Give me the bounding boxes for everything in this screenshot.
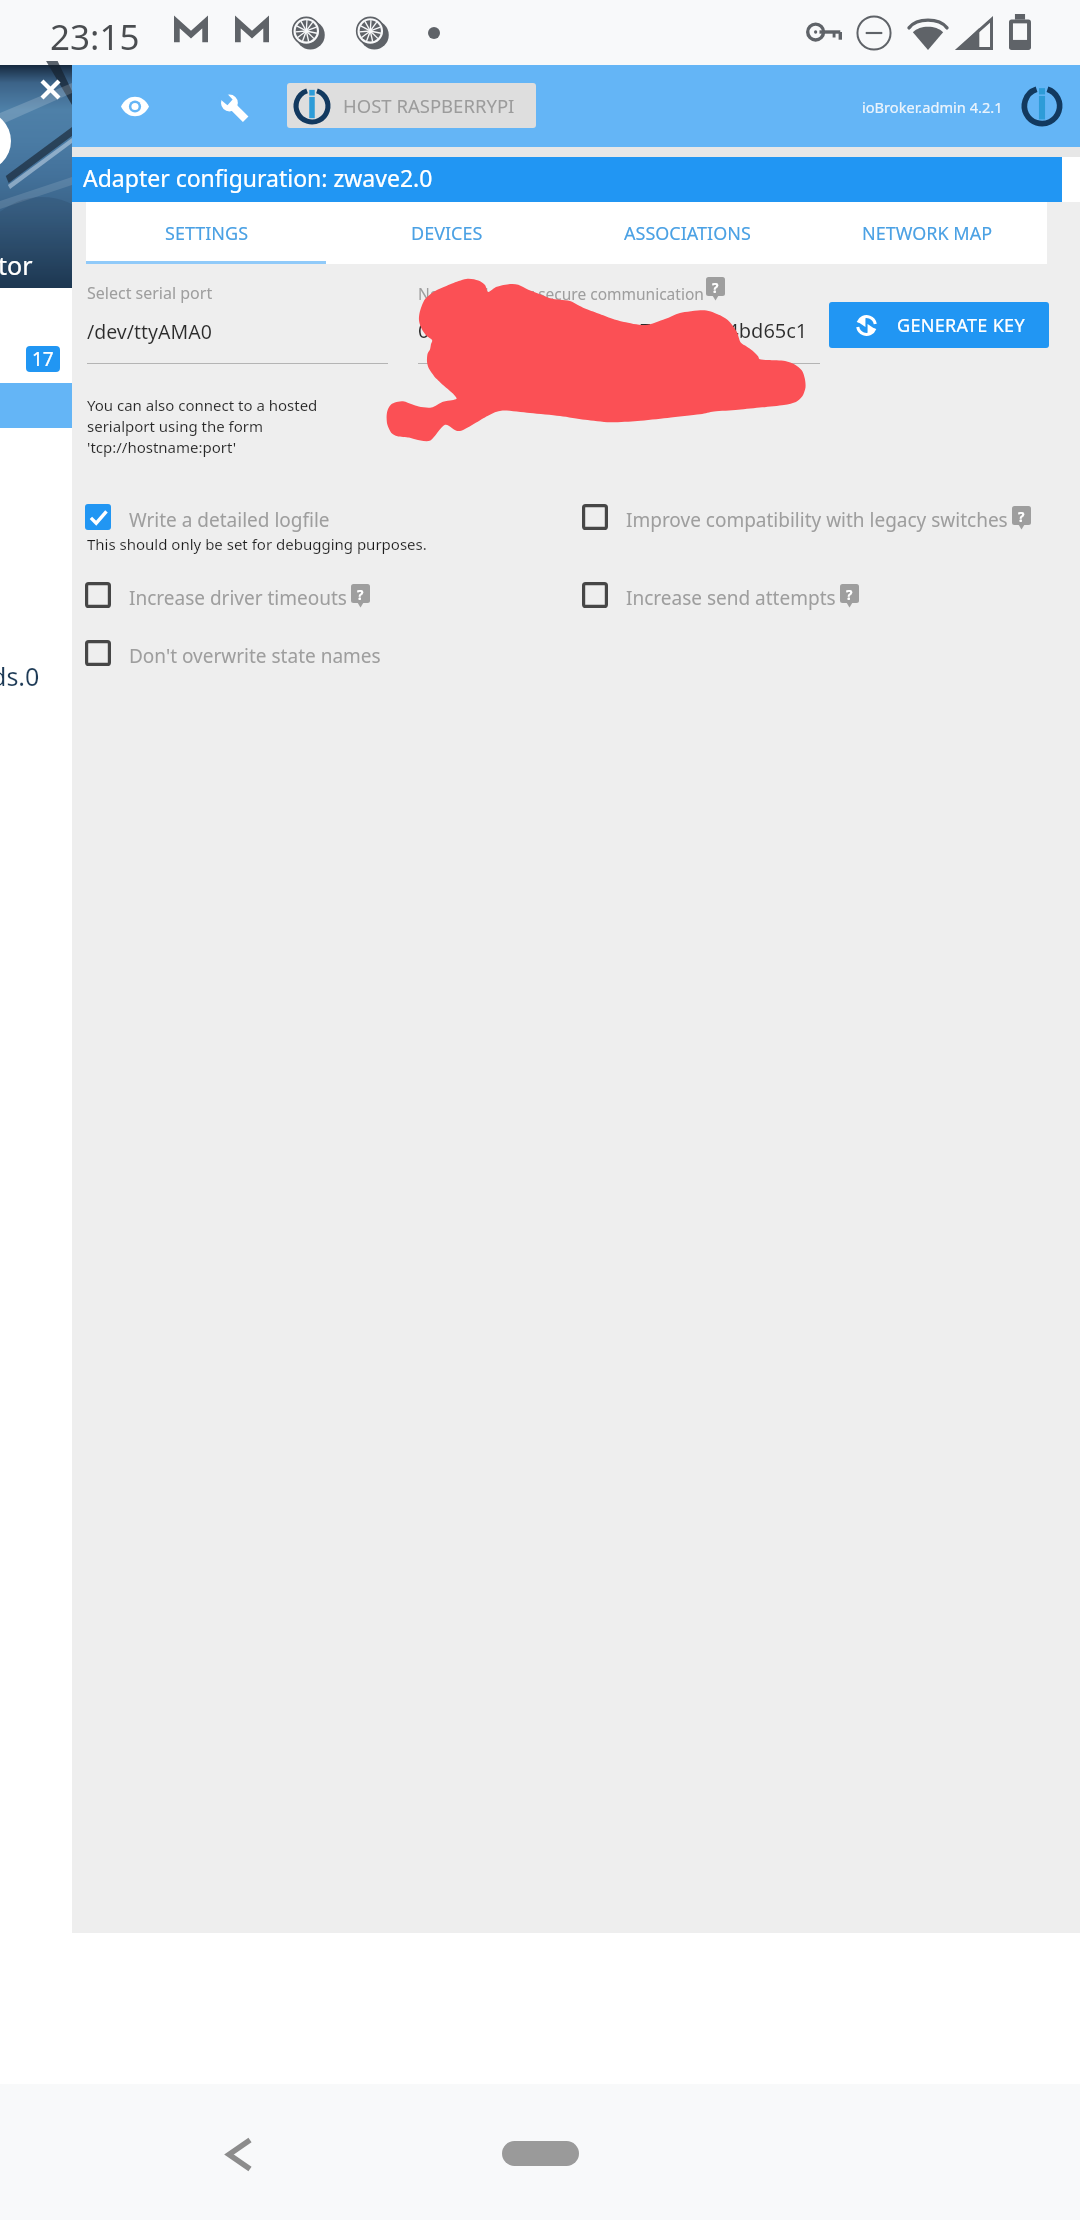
staticText: ?: [846, 586, 853, 604]
staticText: Network key for secure communication: [418, 283, 704, 304]
button[interactable]: HOST RASPBERRYPI: [287, 83, 536, 128]
button[interactable]: Increase driver timeouts: [85, 575, 370, 615]
button[interactable]: DEVICES: [327, 202, 567, 264]
button[interactable]: Settings: [213, 86, 253, 126]
staticText: NETWORK MAP: [862, 221, 993, 246]
staticText: ioBroker.admin 4.2.1: [862, 97, 1003, 117]
staticText: Increase send attempts: [626, 585, 836, 611]
staticText: DEVICES: [411, 221, 483, 246]
staticText: You can also connect to a hosted serialp…: [87, 395, 318, 458]
button[interactable]: Show hidden: [114, 85, 156, 127]
staticText: ?: [357, 586, 364, 604]
staticText: HOST RASPBERRYPI: [343, 93, 515, 118]
staticText: ASSOCIATIONS: [624, 221, 751, 246]
staticText: 23:15: [50, 13, 140, 61]
button[interactable]: Increase send attempts: [582, 575, 859, 615]
staticText: Don't overwrite state names: [129, 643, 381, 669]
staticText: ?: [1018, 508, 1025, 526]
staticText: GENERATE KEY: [897, 313, 1025, 338]
staticText: This should only be set for debugging pu…: [87, 534, 427, 554]
button[interactable]: NETWORK MAP: [807, 202, 1047, 264]
button[interactable]: Close drawer: [42, 81, 59, 98]
staticText: 17: [32, 346, 54, 372]
button[interactable]: Improve compatibility with legacy switch…: [582, 497, 1031, 537]
staticText: Select serial port: [87, 282, 213, 304]
button[interactable]: Home: [502, 2141, 579, 2166]
button[interactable]: ASSOCIATIONS: [567, 202, 807, 264]
staticText: ?: [712, 279, 719, 297]
staticText: Increase driver timeouts: [129, 585, 347, 611]
staticText: /dev/ttyAMA0: [87, 318, 212, 345]
staticText: tor: [0, 248, 33, 282]
staticText: SETTINGS: [165, 221, 249, 246]
staticText: ds.0: [0, 659, 40, 693]
staticText: Adapter configuration: zwave2.0: [83, 162, 433, 193]
button[interactable]: GENERATE KEY: [829, 302, 1049, 348]
button[interactable]: Write a detailed logfile: [85, 497, 330, 537]
button[interactable]: 17: [26, 346, 60, 372]
button[interactable]: Back: [209, 2124, 269, 2184]
button[interactable]: Don't overwrite state names: [85, 633, 381, 673]
button[interactable]: SETTINGS: [86, 202, 327, 264]
staticText: Improve compatibility with legacy switch…: [626, 507, 1008, 533]
staticText: Write a detailed logfile: [129, 507, 330, 533]
staticText: 01f2a8c7be4d93605a1c7f2e8b934bd65c1: [418, 317, 808, 344]
